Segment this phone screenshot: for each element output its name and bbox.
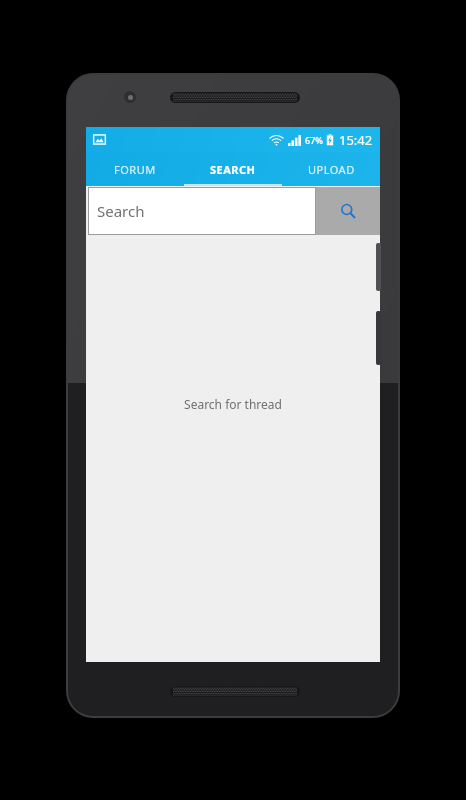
button[interactable]: Search [88,187,316,235]
button[interactable]: SEARCH [184,152,282,186]
staticText: Search for thread [184,396,282,412]
staticText: SEARCH [210,162,256,177]
staticText: UPLOAD [308,162,355,177]
button[interactable]: UPLOAD [282,152,380,186]
button[interactable]: Search [316,187,380,235]
staticText: Search [97,201,145,221]
button[interactable]: FORUM [86,152,184,186]
staticText: FORUM [114,162,156,177]
staticText: 15:42 [339,131,373,149]
staticText: 67% [305,134,323,146]
